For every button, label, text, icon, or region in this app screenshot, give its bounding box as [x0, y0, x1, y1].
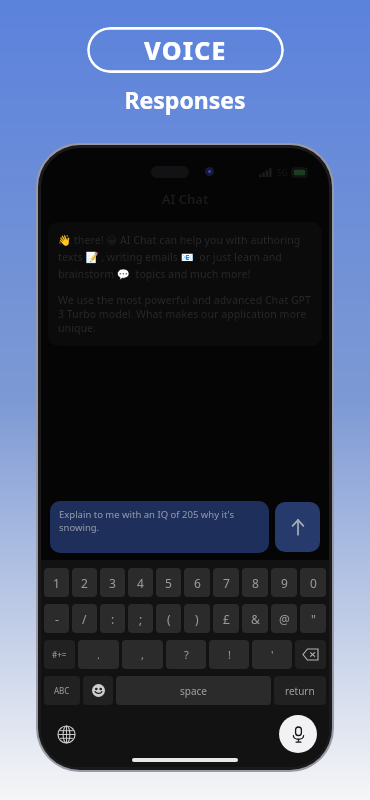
- button[interactable]: .: [78, 640, 119, 669]
- button[interactable]: ?: [166, 640, 206, 669]
- staticText: 0: [310, 575, 317, 591]
- staticText: VOICE: [144, 33, 227, 67]
- staticText: space: [180, 684, 207, 698]
- button[interactable]: Backspace: [295, 640, 326, 669]
- button[interactable]: ": [300, 604, 326, 633]
- staticText: .: [97, 647, 100, 662]
- staticText: return: [285, 684, 315, 698]
- button[interactable]: ': [252, 640, 292, 669]
- staticText: 6: [194, 575, 201, 591]
- staticText: :: [111, 611, 115, 627]
- button[interactable]: Voice input: [279, 715, 317, 753]
- staticText: We use the most powerful and advanced Ch…: [58, 293, 312, 335]
- staticText: £: [223, 611, 230, 627]
- button[interactable]: 1: [44, 568, 69, 597]
- staticText: 1: [53, 575, 60, 591]
- button[interactable]: ABC: [44, 676, 80, 705]
- staticText: 4: [137, 575, 144, 591]
- button[interactable]: space: [116, 676, 271, 705]
- button[interactable]: Send: [275, 502, 320, 552]
- button[interactable]: :: [100, 604, 125, 633]
- staticText: 8: [252, 575, 259, 591]
- staticText: 5G: [277, 167, 288, 178]
- staticText: #+=: [52, 649, 67, 660]
- button[interactable]: 8: [242, 568, 268, 597]
- staticText: ?: [184, 647, 189, 662]
- staticText: ): [195, 611, 199, 627]
- button[interactable]: 5: [156, 568, 181, 597]
- staticText: ABC: [54, 685, 70, 696]
- button[interactable]: 0: [300, 568, 326, 597]
- staticText: ,: [141, 647, 144, 662]
- staticText: 9: [281, 575, 288, 591]
- staticText: ": [311, 611, 316, 627]
- button[interactable]: #+=: [44, 640, 75, 669]
- button[interactable]: -: [44, 604, 69, 633]
- staticText: 3: [109, 575, 116, 591]
- button[interactable]: 6: [184, 568, 210, 597]
- button[interactable]: Emoji: [83, 676, 113, 705]
- button[interactable]: 4: [128, 568, 153, 597]
- staticText: @: [279, 611, 290, 627]
- staticText: (: [167, 611, 171, 627]
- staticText: Explain to me with an IQ of 205 why it's…: [59, 508, 260, 534]
- staticText: Responses: [124, 84, 246, 115]
- staticText: /: [82, 611, 87, 627]
- button[interactable]: £: [213, 604, 239, 633]
- button[interactable]: &: [242, 604, 268, 633]
- staticText: &: [251, 611, 260, 627]
- button[interactable]: !: [209, 640, 249, 669]
- button[interactable]: return: [274, 676, 326, 705]
- staticText: !: [228, 647, 231, 662]
- button[interactable]: /: [72, 604, 97, 633]
- button[interactable]: ,: [122, 640, 163, 669]
- button[interactable]: ): [184, 604, 210, 633]
- button[interactable]: @: [271, 604, 297, 633]
- button[interactable]: ;: [128, 604, 153, 633]
- staticText: -: [55, 611, 59, 627]
- staticText: ;: [139, 611, 143, 627]
- staticText: 2: [81, 575, 88, 591]
- button[interactable]: 2: [72, 568, 97, 597]
- staticText: AI Chat: [41, 190, 329, 208]
- button[interactable]: 7: [213, 568, 239, 597]
- staticText: 👋 there! 😀 AI Chat can help you with aut…: [58, 233, 312, 282]
- staticText: 5: [165, 575, 172, 591]
- button[interactable]: 3: [100, 568, 125, 597]
- staticText: ': [271, 647, 274, 662]
- button[interactable]: Explain to me with an IQ of 205 why it's…: [50, 501, 269, 553]
- staticText: 7: [223, 575, 230, 591]
- button[interactable]: (: [156, 604, 181, 633]
- button[interactable]: 9: [271, 568, 297, 597]
- button[interactable]: VOICE: [87, 27, 284, 73]
- button[interactable]: Change keyboard language: [53, 721, 79, 747]
